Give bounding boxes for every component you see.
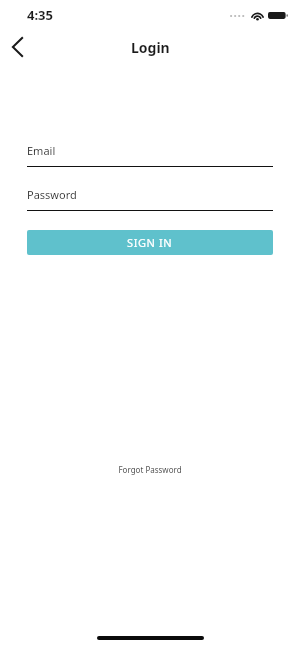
- staticText: Forgot Password: [118, 464, 182, 475]
- button[interactable]: SIGN IN: [27, 230, 273, 255]
- button[interactable]: Password: [27, 187, 273, 211]
- staticText: Password: [27, 187, 77, 202]
- staticText: Login: [131, 38, 170, 57]
- button[interactable]: Back: [0, 30, 34, 64]
- staticText: SIGN IN: [127, 235, 173, 250]
- staticText: Email: [27, 143, 56, 158]
- staticText: 4:35: [27, 6, 53, 24]
- button[interactable]: Email: [27, 143, 273, 167]
- button[interactable]: Forgot Password: [108, 460, 192, 479]
